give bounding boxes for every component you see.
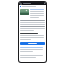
button[interactable]: Menu [19, 2, 46, 5]
button[interactable]: Photo [20, 9, 29, 15]
button[interactable]: Primary action [20, 42, 45, 45]
